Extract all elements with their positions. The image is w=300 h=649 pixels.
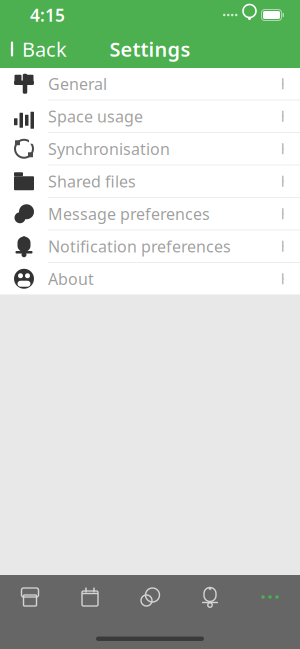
button[interactable]: Message preferences xyxy=(0,197,300,229)
button[interactable]: Notifications xyxy=(180,575,240,619)
button[interactable]: Calendar xyxy=(60,575,120,619)
button[interactable]: About xyxy=(0,262,300,294)
staticText: 4:15 xyxy=(30,3,65,26)
button[interactable]: General xyxy=(0,68,300,99)
staticText: Back xyxy=(22,36,67,62)
staticText: Message preferences xyxy=(48,203,210,224)
staticText: About xyxy=(48,268,94,289)
staticText: Space usage xyxy=(48,106,143,127)
button[interactable]: Back xyxy=(0,30,77,68)
staticText: Notification preferences xyxy=(48,236,231,257)
staticText: Shared files xyxy=(48,171,136,192)
button[interactable]: Home xyxy=(0,575,60,619)
button[interactable]: Notification preferences xyxy=(0,229,300,262)
button[interactable]: Shared files xyxy=(0,164,300,197)
staticText: General xyxy=(48,73,107,94)
button[interactable]: More xyxy=(240,575,300,619)
button[interactable]: Messages xyxy=(120,575,180,619)
button[interactable]: Synchronisation xyxy=(0,132,300,164)
staticText: Settings xyxy=(109,36,190,62)
staticText: Synchronisation xyxy=(48,138,170,159)
button[interactable]: Space usage xyxy=(0,99,300,132)
